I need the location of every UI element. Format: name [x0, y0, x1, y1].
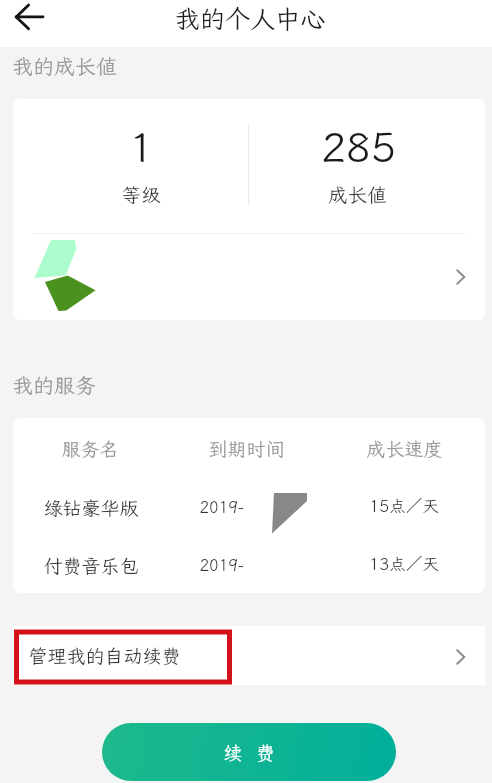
staticText: 服务名	[61, 436, 119, 461]
button[interactable]	[102, 723, 396, 781]
staticText: 2019-	[199, 554, 244, 575]
staticText: 续 费	[223, 740, 275, 765]
staticText: 成长值	[328, 182, 387, 208]
staticText: 13点／天	[369, 553, 439, 575]
button[interactable]: Back	[0, 0, 58, 40]
staticText: 管理我的自动续费	[28, 643, 181, 668]
staticText: 绿钻豪华版	[43, 495, 139, 520]
staticText: 1	[129, 120, 154, 174]
staticText: 285	[321, 119, 396, 174]
staticText: 等级	[121, 182, 161, 208]
staticText: 15点／天	[369, 495, 439, 517]
button[interactable]	[13, 626, 485, 685]
staticText: 付费音乐包	[43, 553, 139, 578]
staticText: 我的服务	[12, 371, 96, 399]
button[interactable]: Growth details	[437, 254, 484, 300]
staticText: 成长速度	[366, 436, 443, 461]
staticText: 2019-	[199, 496, 244, 517]
staticText: 我的成长值	[12, 52, 117, 80]
staticText: 我的个人中心	[174, 2, 326, 35]
staticText: 到期时间	[208, 436, 285, 461]
